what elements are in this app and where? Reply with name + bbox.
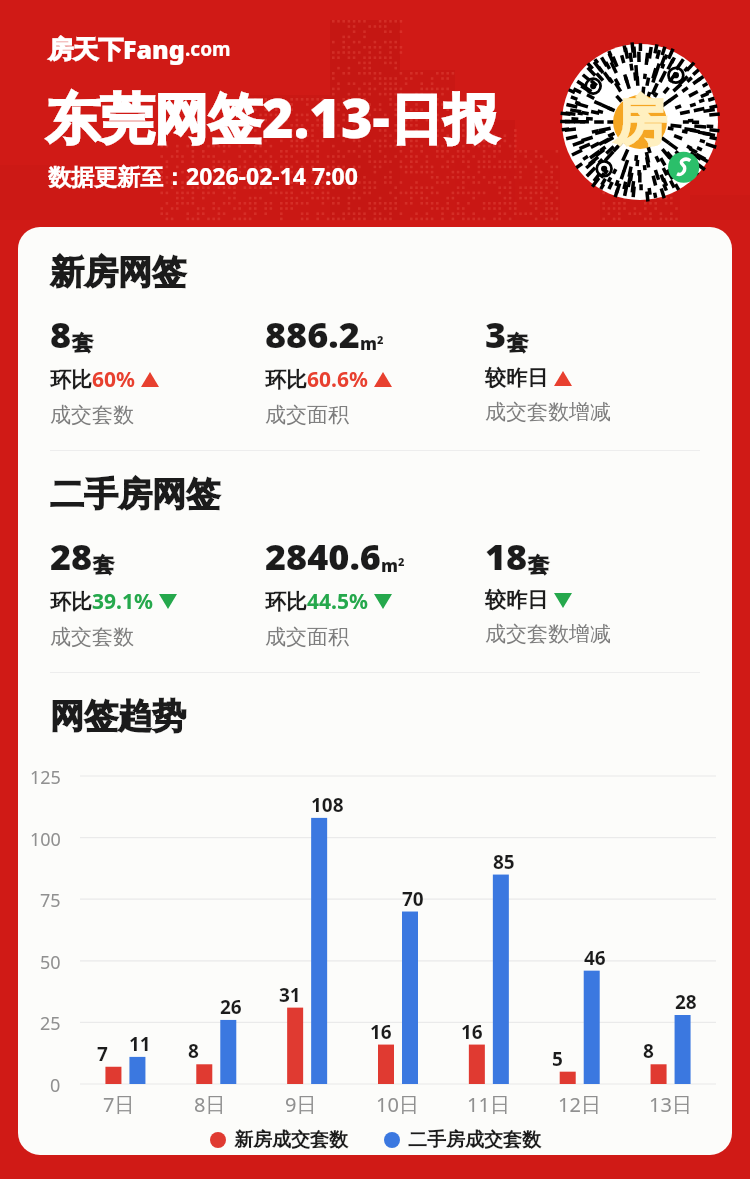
- staticText: 0: [50, 1073, 61, 1098]
- staticText: 网签趋势: [50, 695, 186, 738]
- staticText: 房: [614, 89, 666, 155]
- staticText: 7: [97, 1041, 108, 1067]
- staticText: 套: [507, 330, 528, 356]
- staticText: 13日: [649, 1091, 692, 1118]
- button[interactable]: 18: [485, 532, 611, 647]
- staticText: 成交套数增减: [485, 399, 611, 425]
- staticText: 11日: [467, 1091, 510, 1118]
- staticText: 8: [643, 1038, 654, 1064]
- staticText: 10日: [376, 1091, 419, 1118]
- staticText: 85: [493, 849, 515, 875]
- staticText: 环比: [50, 367, 92, 393]
- staticText: 2: [377, 332, 384, 347]
- staticText: 套: [528, 552, 549, 578]
- staticText: 16: [461, 1019, 483, 1045]
- staticText: 125: [30, 765, 61, 790]
- button[interactable]: 3: [485, 310, 611, 425]
- staticText: 9日: [285, 1091, 317, 1118]
- staticText: 11: [129, 1031, 151, 1057]
- staticText: 新房网签: [50, 251, 186, 294]
- staticText: 31: [279, 982, 301, 1008]
- staticText: 46: [584, 945, 606, 971]
- staticText: 28: [675, 989, 697, 1015]
- staticText: 二手房成交套数: [408, 1128, 541, 1152]
- staticText: 18: [485, 532, 528, 581]
- staticText: 886.2: [265, 310, 360, 359]
- staticText: 环比: [50, 589, 92, 615]
- button[interactable]: 二手房成交套数: [384, 1128, 541, 1152]
- staticText: 2840.6: [265, 532, 381, 581]
- staticText: 50: [40, 950, 61, 975]
- staticText: 环比: [265, 367, 307, 393]
- staticText: 100: [30, 827, 61, 852]
- staticText: 套: [93, 552, 114, 578]
- staticText: 2: [398, 554, 405, 569]
- staticText: 44.5%: [307, 587, 368, 616]
- staticText: 25: [40, 1011, 61, 1036]
- staticText: 较昨日: [485, 365, 548, 391]
- staticText: 8: [188, 1038, 199, 1064]
- staticText: 5: [552, 1046, 563, 1072]
- button[interactable]: 28: [50, 532, 177, 650]
- button[interactable]: 886.2: [265, 310, 392, 428]
- staticText: 3: [485, 310, 507, 359]
- staticText: m: [381, 554, 398, 577]
- staticText: 数据更新至：2026-02-14 7:00: [48, 160, 358, 191]
- button[interactable]: 8: [50, 310, 159, 428]
- staticText: 8: [50, 310, 72, 359]
- button[interactable]: Scan QR code: [562, 44, 718, 200]
- staticText: 60.6%: [307, 365, 368, 394]
- staticText: 28: [50, 532, 93, 581]
- staticText: 套: [72, 330, 93, 356]
- staticText: 房天下: [48, 34, 123, 65]
- staticText: Fang: [123, 32, 185, 66]
- staticText: 新房成交套数: [234, 1128, 348, 1152]
- button[interactable]: 新房成交套数: [210, 1128, 348, 1152]
- staticText: 成交面积: [265, 624, 349, 650]
- staticText: 环比: [265, 589, 307, 615]
- staticText: 二手房网签: [50, 473, 220, 516]
- button[interactable]: 2840.6: [265, 532, 405, 650]
- staticText: 108: [311, 792, 344, 818]
- staticText: 8日: [194, 1091, 226, 1118]
- staticText: 东莞网签2.13-日报: [46, 80, 498, 154]
- staticText: 39.1%: [92, 587, 153, 616]
- staticText: 75: [40, 888, 61, 913]
- staticText: .com: [185, 36, 231, 62]
- staticText: 成交套数增减: [485, 621, 611, 647]
- staticText: 成交面积: [265, 402, 349, 428]
- staticText: 成交套数: [50, 624, 134, 650]
- staticText: 12日: [558, 1091, 601, 1118]
- staticText: 26: [220, 994, 242, 1020]
- staticText: 70: [402, 886, 424, 912]
- staticText: 较昨日: [485, 587, 548, 613]
- staticText: 60%: [92, 365, 135, 394]
- staticText: m: [360, 332, 377, 355]
- staticText: 16: [370, 1019, 392, 1045]
- staticText: 7日: [103, 1091, 135, 1118]
- staticText: 成交套数: [50, 402, 134, 428]
